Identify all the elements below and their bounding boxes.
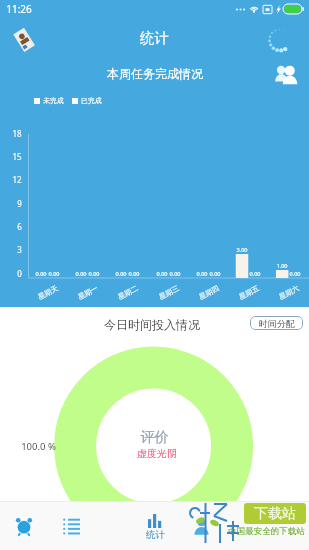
staticText: 0.00 (196, 270, 208, 278)
staticText: 0.00 (115, 270, 127, 278)
staticText: 0.00 (35, 270, 47, 278)
staticText: 中国最安全的下载站 (228, 526, 305, 537)
staticText: 虚度光阴 (137, 447, 177, 460)
staticText: 已完成 (81, 96, 102, 105)
staticText: 未完成 (43, 96, 64, 105)
staticText: 0.00 (128, 270, 140, 278)
staticText: 3 (17, 244, 22, 255)
staticText: 下载站 (254, 505, 296, 523)
staticText: 0.00 (156, 270, 168, 278)
staticText: 星期天 (36, 283, 60, 302)
staticText: 0.00 (289, 270, 301, 278)
staticText: 0.00 (75, 270, 87, 278)
staticText: 1.00 (276, 262, 288, 270)
button[interactable]: Friends (273, 62, 300, 86)
staticText: 0.00 (48, 270, 60, 278)
staticText: 星期四 (197, 283, 221, 302)
button[interactable]: Alarm (1, 502, 47, 550)
staticText: 时间分配 (259, 318, 295, 329)
staticText: 0.00 (169, 270, 181, 278)
staticText: 统计 (146, 529, 165, 541)
staticText: 星期三 (157, 283, 181, 302)
staticText: 15 (12, 151, 22, 162)
button[interactable]: Profile (178, 502, 224, 550)
staticText: 100.0 % (21, 440, 56, 453)
staticText: 18 (12, 128, 22, 139)
staticText: 3.00 (236, 246, 248, 254)
staticText: 9 (17, 198, 22, 209)
staticText: 星期二 (116, 283, 140, 302)
button[interactable]: 时间分配 (250, 316, 303, 330)
button[interactable]: Profile (10, 26, 38, 54)
staticText: 星期一 (76, 283, 100, 302)
button[interactable]: Tasks (48, 502, 94, 550)
staticText: 统计 (140, 29, 169, 47)
staticText: 本周任务完成情况 (107, 66, 203, 81)
staticText: 今日时间投入情况 (104, 317, 200, 332)
staticText: 11:26 (6, 2, 32, 16)
staticText: 0 (17, 268, 22, 279)
button[interactable]: Statistics (132, 502, 178, 550)
staticText: 0.00 (88, 270, 100, 278)
staticText: 星期六 (277, 283, 301, 302)
staticText: 评价 (140, 428, 169, 446)
staticText: 0.00 (209, 270, 221, 278)
staticText: 0.00 (249, 270, 261, 278)
staticText: 6 (17, 221, 22, 232)
staticText: 12 (12, 174, 22, 185)
button[interactable]: Loading (267, 27, 293, 53)
staticText: 星期五 (237, 283, 261, 302)
